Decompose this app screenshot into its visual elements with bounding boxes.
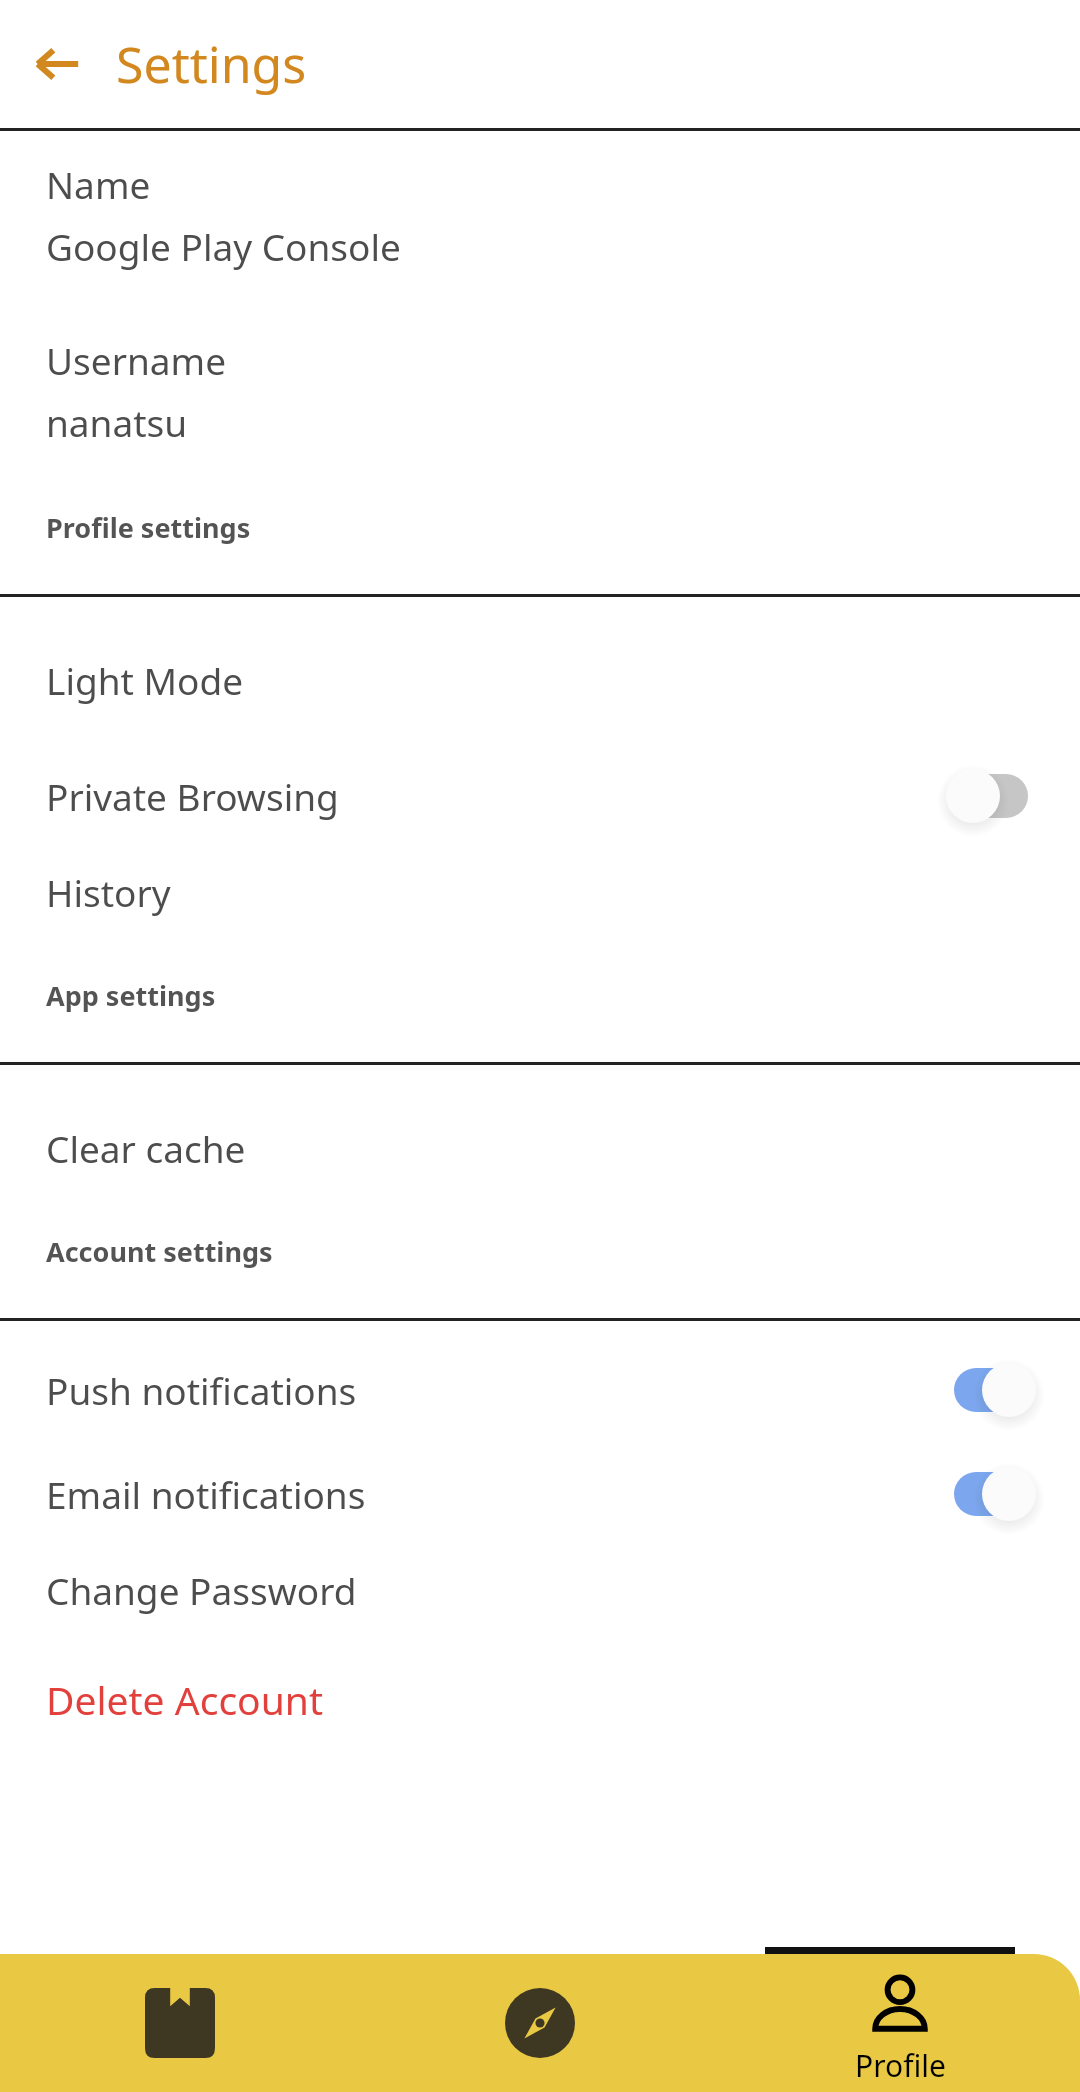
staticText: Account settings bbox=[46, 1233, 273, 1270]
button[interactable]: History bbox=[0, 861, 1080, 923]
button[interactable]: Clear cache bbox=[0, 1117, 1080, 1179]
button[interactable]: Bookmarks bbox=[0, 1954, 360, 2092]
staticText: Private Browsing bbox=[46, 771, 339, 821]
button[interactable]: Username bbox=[0, 329, 1080, 453]
button[interactable]: Profile bbox=[720, 1954, 1080, 2092]
button[interactable]: Explore bbox=[360, 1954, 720, 2092]
button[interactable]: Name bbox=[0, 153, 1080, 277]
button[interactable]: Push notifications bbox=[0, 1351, 1080, 1429]
button[interactable]: Back bbox=[20, 27, 94, 101]
staticText: Google Play Console bbox=[46, 221, 401, 271]
button[interactable]: Off bbox=[948, 764, 1034, 828]
staticText: Push notifications bbox=[46, 1365, 357, 1415]
staticText: Light Mode bbox=[46, 655, 244, 705]
staticText: Email notifications bbox=[46, 1469, 366, 1519]
staticText: Username bbox=[46, 335, 227, 385]
staticText: App settings bbox=[46, 977, 216, 1014]
staticText: Clear cache bbox=[46, 1123, 246, 1173]
staticText: Profile bbox=[855, 2045, 946, 2086]
staticText: Profile settings bbox=[46, 509, 251, 546]
button[interactable]: Email notifications bbox=[0, 1455, 1080, 1533]
staticText: History bbox=[46, 867, 171, 917]
button[interactable]: Change Password bbox=[0, 1559, 1080, 1621]
staticText: Delete Account bbox=[46, 1673, 323, 1726]
button[interactable]: Light Mode bbox=[0, 649, 1080, 711]
button[interactable]: Delete Account bbox=[0, 1667, 1080, 1732]
staticText: Change Password bbox=[46, 1565, 357, 1615]
button[interactable]: On bbox=[948, 1358, 1034, 1422]
staticText: Settings bbox=[116, 30, 307, 98]
button[interactable]: Private Browsing bbox=[0, 757, 1080, 835]
button[interactable]: On bbox=[948, 1462, 1034, 1526]
staticText: Name bbox=[46, 159, 151, 209]
staticText: nanatsu bbox=[46, 397, 188, 447]
